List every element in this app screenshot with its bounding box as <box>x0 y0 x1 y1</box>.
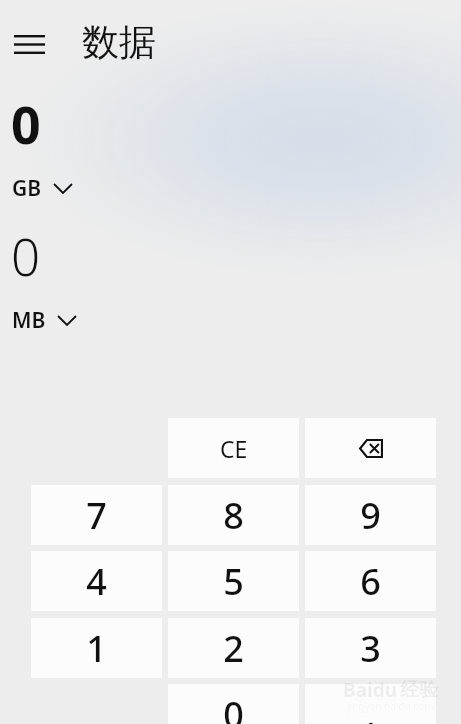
staticText: 0 <box>11 88 41 159</box>
button[interactable]: Megabytes value, 0 <box>0 217 461 297</box>
button[interactable]: GB <box>6 172 86 204</box>
button[interactable]: Backspace <box>305 418 436 478</box>
staticText: Baidu <box>343 677 398 703</box>
button[interactable]: Gigabytes value, 0 <box>0 84 461 164</box>
button[interactable]: MB <box>6 304 92 336</box>
button[interactable]: Menu <box>4 26 54 62</box>
staticText: 0 <box>223 690 244 724</box>
staticText: 8 <box>223 491 244 540</box>
staticText: 7 <box>86 491 107 540</box>
staticText: . <box>366 690 376 724</box>
button[interactable]: 8 <box>168 485 299 545</box>
button[interactable]: 5 <box>168 551 299 611</box>
staticText: 4 <box>86 557 107 606</box>
staticText: 3 <box>360 624 381 673</box>
staticText: GB <box>12 174 42 203</box>
button[interactable]: 6 <box>305 551 436 611</box>
button[interactable]: 3 <box>305 618 436 678</box>
button[interactable]: 1 <box>31 618 162 678</box>
staticText: CE <box>220 433 248 464</box>
staticText: 1 <box>86 624 107 673</box>
staticText: 2 <box>223 624 244 673</box>
staticText: 5 <box>223 557 244 606</box>
button[interactable]: 2 <box>168 618 299 678</box>
staticText: 数据 <box>82 19 156 66</box>
staticText: 9 <box>360 491 381 540</box>
button[interactable]: 7 <box>31 485 162 545</box>
staticText: 0 <box>11 221 41 290</box>
staticText: MB <box>12 306 46 335</box>
button[interactable]: 0 <box>168 684 299 724</box>
button[interactable]: . <box>305 684 436 724</box>
staticText: 6 <box>360 557 381 606</box>
button[interactable]: 9 <box>305 485 436 545</box>
staticText: 经验 <box>400 678 438 702</box>
button[interactable]: CE <box>168 418 299 478</box>
button[interactable]: 4 <box>31 551 162 611</box>
